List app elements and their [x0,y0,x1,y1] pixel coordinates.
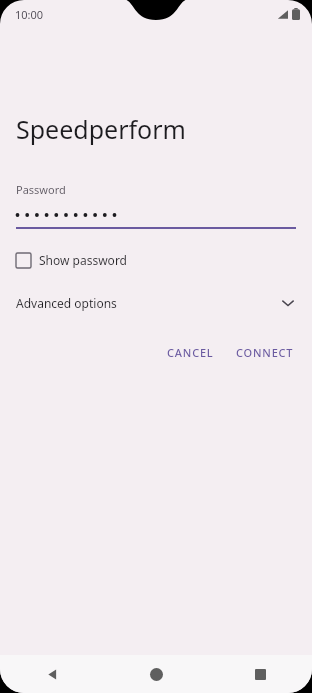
staticText: 10:00 [15,7,44,22]
staticText: Advanced options [16,295,117,311]
staticText: Show password [39,252,127,268]
button[interactable]: Advanced options [0,291,312,315]
staticText: Password [16,182,66,197]
button[interactable]: CANCEL [159,339,222,366]
other: Expand advanced options [280,295,296,311]
staticText: Speedperform [16,112,186,146]
button[interactable]: Recent apps [208,655,312,693]
staticText: CANCEL [167,345,214,360]
button[interactable]: Home [104,655,208,693]
button[interactable]: Show password [16,250,135,270]
button[interactable]: CONNECT [228,339,302,366]
button[interactable]: Back [0,655,104,693]
button[interactable]: Password [16,182,296,229]
staticText: CONNECT [236,345,294,360]
